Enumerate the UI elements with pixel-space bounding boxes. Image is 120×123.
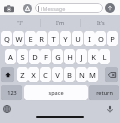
staticText: W: [15, 34, 23, 44]
button[interactable]: G: [52, 49, 63, 64]
staticText: It's: [97, 19, 105, 26]
button[interactable]: "I": [0, 15, 40, 30]
button[interactable]: H: [64, 49, 75, 64]
button[interactable]: Send: [105, 3, 115, 13]
button[interactable]: Switch keyboard: [2, 104, 12, 114]
staticText: F: [44, 52, 48, 62]
button[interactable]: A: [5, 49, 16, 64]
button[interactable]: N: [76, 67, 87, 82]
button[interactable]: Dictation: [105, 104, 115, 114]
button[interactable]: T: [48, 31, 59, 46]
staticText: E: [28, 34, 33, 44]
button[interactable]: Camera: [3, 3, 14, 14]
staticText: Q: [4, 34, 10, 44]
staticText: space: [48, 89, 64, 96]
staticText: O: [98, 34, 104, 44]
button[interactable]: Q: [1, 31, 12, 46]
staticText: iMessage: [41, 5, 66, 12]
staticText: V: [55, 70, 60, 80]
button[interactable]: F: [40, 49, 51, 64]
staticText: B: [67, 70, 72, 80]
button[interactable]: Backspace: [105, 67, 118, 82]
staticText: X: [31, 70, 36, 80]
button[interactable]: I: [84, 31, 95, 46]
staticText: G: [55, 52, 61, 62]
staticText: U: [75, 34, 81, 44]
button[interactable]: O: [95, 31, 106, 46]
staticText: J: [80, 52, 83, 62]
staticText: return: [96, 89, 113, 96]
button[interactable]: K: [88, 49, 99, 64]
button[interactable]: App Store: [22, 3, 32, 13]
button[interactable]: I'm: [41, 15, 80, 30]
button[interactable]: Z: [17, 67, 28, 82]
staticText: 123: [7, 89, 17, 96]
staticText: I'm: [56, 19, 65, 26]
button[interactable]: D: [29, 49, 40, 64]
staticText: N: [79, 70, 85, 80]
button[interactable]: return: [89, 85, 119, 100]
staticText: H: [67, 52, 73, 62]
staticText: M: [89, 70, 96, 80]
staticText: "I": [17, 19, 24, 26]
staticText: C: [43, 70, 48, 80]
button[interactable]: Y: [60, 31, 71, 46]
staticText: R: [39, 34, 44, 44]
button[interactable]: P: [107, 31, 118, 46]
staticText: Y: [63, 34, 68, 44]
staticText: S: [20, 52, 25, 62]
button[interactable]: W: [13, 31, 24, 46]
staticText: Z: [20, 70, 25, 80]
button[interactable]: B: [64, 67, 75, 82]
button[interactable]: L: [99, 49, 110, 64]
staticText: D: [32, 52, 38, 62]
button[interactable]: R: [36, 31, 47, 46]
button[interactable]: 123: [1, 85, 22, 100]
staticText: I: [88, 34, 91, 44]
staticText: K: [91, 52, 96, 62]
staticText: T: [51, 34, 56, 44]
button[interactable]: E: [25, 31, 36, 46]
button[interactable]: U: [72, 31, 83, 46]
button[interactable]: J: [76, 49, 87, 64]
button[interactable]: V: [52, 67, 63, 82]
button[interactable]: S: [17, 49, 28, 64]
button[interactable]: It's: [81, 15, 120, 30]
button[interactable]: M: [87, 67, 98, 82]
staticText: L: [102, 52, 107, 62]
button[interactable]: C: [40, 67, 51, 82]
button[interactable]: X: [28, 67, 39, 82]
button[interactable]: iMessage: [35, 3, 103, 13]
button[interactable]: Shift: [1, 67, 14, 82]
staticText: A: [8, 52, 13, 62]
staticText: P: [110, 34, 115, 44]
button[interactable]: space: [24, 85, 88, 100]
